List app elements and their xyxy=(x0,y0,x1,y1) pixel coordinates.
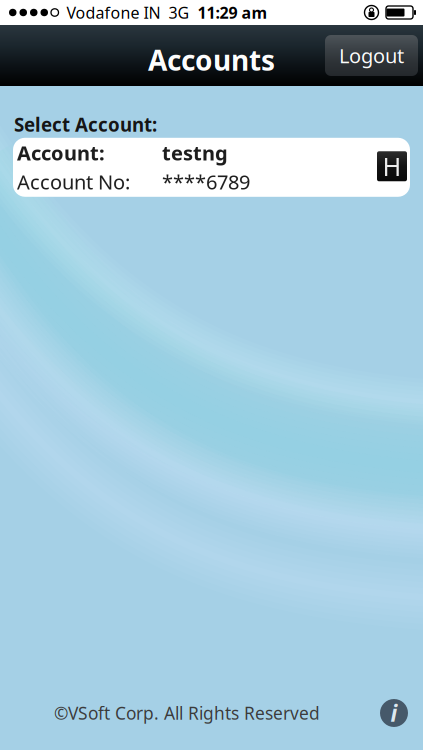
button[interactable]: Logout xyxy=(325,35,418,76)
staticText: testng xyxy=(162,139,228,166)
staticText: Account No: xyxy=(17,168,130,195)
staticText: i xyxy=(390,698,397,728)
staticText: ****6789 xyxy=(162,168,250,195)
staticText: Logout xyxy=(339,42,404,69)
button[interactable]: Info xyxy=(373,692,415,734)
staticText: ©VSoft Corp. All Rights Reserved xyxy=(54,701,320,724)
staticText: Vodafone IN 3G xyxy=(58,2,197,23)
staticText: Account: xyxy=(17,139,105,166)
staticText: H xyxy=(382,149,401,183)
staticText: Accounts xyxy=(148,41,275,79)
button[interactable]: Account: xyxy=(13,138,410,197)
staticText: Select Account: xyxy=(14,112,157,137)
staticText: 11:29 am xyxy=(197,2,267,23)
